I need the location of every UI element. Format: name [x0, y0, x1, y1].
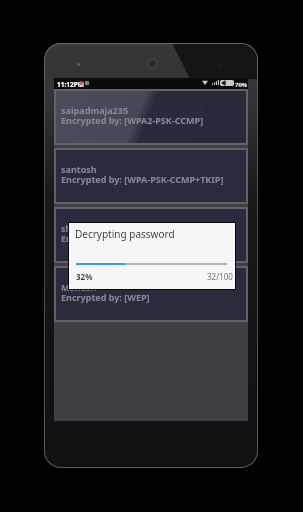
staticText: saipadmaja235: [61, 104, 129, 116]
button[interactable]: saipadmaja235: [56, 91, 246, 143]
staticText: shivashankar: [61, 222, 122, 234]
staticText: 32/100: [207, 271, 233, 282]
staticText: Encrypted by: [WPA-PSK-CCMP+TKIP]: [61, 173, 224, 185]
staticText: 11:12PM: [57, 80, 84, 89]
button[interactable]: santosh: [56, 150, 246, 202]
staticText: Decrypting password: [75, 227, 175, 241]
staticText: Encrypted by: [WEP]: [61, 291, 150, 303]
staticText: Encrypted by: [WPA2-PSK-CCMP]: [61, 114, 204, 126]
staticText: 70%: [235, 81, 248, 89]
button[interactable]: shivashankar: [56, 209, 246, 261]
staticText: santosh: [61, 163, 97, 175]
staticText: Encrypted by: [WPA2-PSK-CCMP]: [61, 232, 204, 244]
staticText: Mahesh: [61, 281, 97, 293]
staticText: 32%: [76, 271, 93, 282]
button[interactable]: Mahesh: [56, 268, 246, 320]
